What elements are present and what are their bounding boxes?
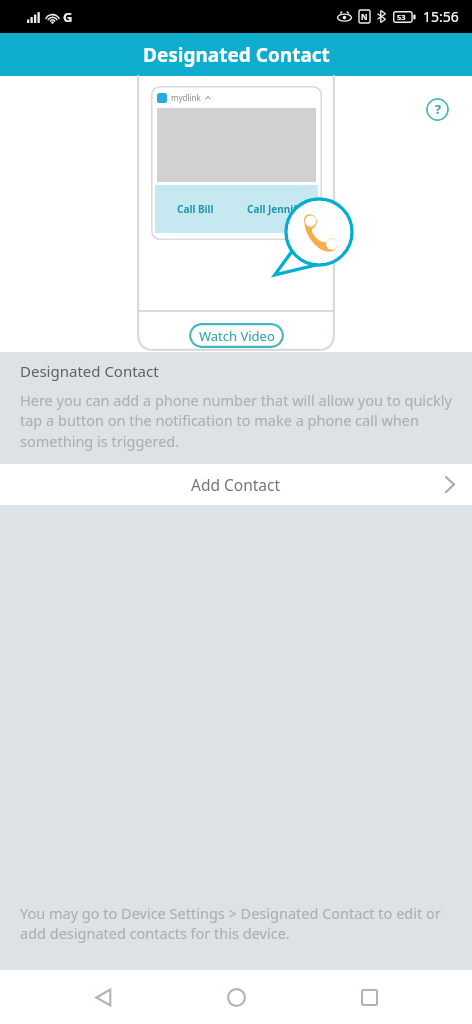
button[interactable]: Watch Video xyxy=(189,323,284,348)
staticText: You may go to Device Settings > Designat… xyxy=(20,903,454,944)
button[interactable]: Add Contact xyxy=(0,464,472,505)
staticText: N xyxy=(361,11,368,22)
staticText: G xyxy=(63,8,73,26)
button[interactable]: Back xyxy=(73,970,133,1024)
button[interactable]: Help xyxy=(426,98,449,121)
staticText: 53 xyxy=(397,12,406,22)
staticText: Designated Contact xyxy=(20,361,159,381)
staticText: Add Contact xyxy=(191,474,281,495)
staticText: mydlink xyxy=(171,92,201,103)
staticText: ? xyxy=(435,101,441,118)
button[interactable]: Recent apps xyxy=(339,970,399,1024)
button[interactable]: Call Bill xyxy=(155,185,236,233)
staticText: Designated Contact xyxy=(143,42,330,68)
staticText: Call Jennifer xyxy=(247,202,308,216)
staticText: Watch Video xyxy=(199,327,275,345)
button[interactable]: Home xyxy=(206,970,266,1024)
button[interactable]: Call Jennifer xyxy=(236,185,318,233)
staticText: Call Bill xyxy=(177,202,214,216)
staticText: 15:56 xyxy=(423,7,459,26)
staticText: Here you can add a phone number that wil… xyxy=(20,390,454,452)
